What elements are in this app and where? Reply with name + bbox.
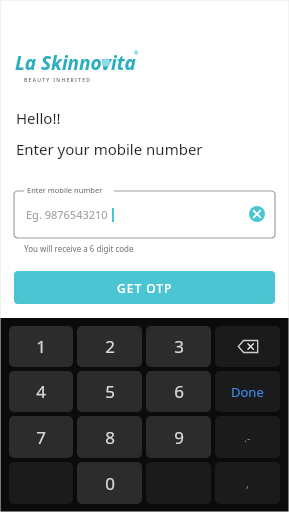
staticText: B E A U T Y I N H E R I T E D [24, 77, 90, 84]
staticText: 6 [174, 380, 184, 403]
staticText: 7 [36, 426, 46, 449]
button[interactable]: Clear text [249, 206, 265, 222]
button[interactable]: Backspace [215, 326, 280, 367]
button[interactable]: GET OTP [14, 271, 275, 304]
button[interactable]: 4 [9, 371, 73, 412]
staticText: You will receive a 6 digit code [24, 243, 134, 254]
staticText: 2 [105, 335, 115, 358]
button[interactable]: .- [215, 416, 280, 458]
staticText: 1 [36, 335, 46, 358]
staticText: 3 [174, 335, 184, 358]
button[interactable]: Done [215, 371, 280, 412]
staticText: Enter mobile number [27, 185, 103, 195]
staticText: La Skinnovita [15, 50, 136, 76]
staticText: GET OTP [117, 280, 173, 296]
button[interactable]: 6 [146, 371, 211, 412]
button[interactable]: 9 [146, 416, 211, 458]
staticText: 5 [105, 380, 115, 403]
staticText: 9 [174, 426, 184, 449]
staticText: 4 [36, 380, 46, 403]
button[interactable]: 2 [77, 326, 142, 367]
staticText: Eg. 9876543210 [26, 207, 108, 222]
staticText: Hello!! [16, 108, 61, 128]
button[interactable]: 7 [9, 416, 73, 458]
staticText: 8 [105, 426, 115, 449]
staticText: 0 [105, 472, 115, 495]
button[interactable]: 0 [77, 462, 142, 504]
staticText: Enter your mobile number [16, 139, 203, 159]
button[interactable]: 3 [146, 326, 211, 367]
staticText: , [246, 476, 249, 491]
button[interactable]: 5 [77, 371, 142, 412]
button[interactable]: 8 [77, 416, 142, 458]
staticText: .- [244, 430, 251, 445]
button[interactable]: 1 [9, 326, 73, 367]
staticText: ® [134, 50, 139, 57]
button[interactable]: , [215, 462, 280, 504]
staticText: Done [231, 383, 264, 401]
